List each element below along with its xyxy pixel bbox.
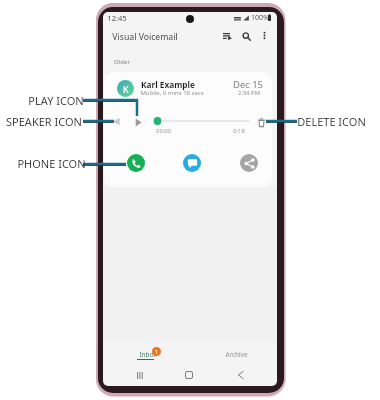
button[interactable]: Play	[131, 115, 145, 129]
staticText: 0:18	[233, 127, 245, 135]
button[interactable]: Inbox	[125, 348, 175, 376]
staticText: PHONE ICON	[17, 156, 86, 171]
staticText: 12:45	[107, 13, 127, 23]
staticText: 1	[155, 348, 159, 355]
staticText: DELETE ICON	[297, 114, 366, 129]
button[interactable]: Home	[180, 366, 198, 384]
staticText: 100%	[251, 13, 269, 23]
staticText: 2:34 PM	[238, 89, 260, 97]
staticText: Karl Example	[141, 79, 195, 90]
button[interactable]: Back	[231, 366, 249, 384]
staticText: K	[123, 83, 129, 95]
button[interactable]: More options	[257, 28, 271, 42]
staticText: SPEAKER ICON	[6, 114, 82, 129]
staticText: Mobile, 0 mins 18 secs	[140, 89, 204, 97]
staticText: Dec 15	[233, 78, 263, 91]
staticText: Archive	[225, 350, 248, 359]
button[interactable]: Message	[183, 154, 201, 172]
button[interactable]: Delete	[254, 115, 268, 129]
button[interactable]: Recents	[131, 366, 149, 384]
staticText: Visual Voicemail	[112, 31, 178, 43]
button[interactable]: Inbox	[103, 348, 277, 376]
staticText: Inbox	[139, 350, 157, 359]
button[interactable]: Speaker	[109, 114, 123, 128]
button[interactable]: Call	[127, 154, 145, 172]
button[interactable]: Archive	[211, 348, 261, 376]
button[interactable]: Share	[240, 154, 258, 172]
button[interactable]: Play all	[219, 28, 235, 44]
staticText: 00:00	[156, 127, 171, 135]
staticText: PLAY ICON	[28, 93, 84, 108]
button[interactable]: K	[104, 72, 272, 187]
button[interactable]: Search	[238, 28, 254, 44]
staticText: Older	[114, 58, 130, 66]
